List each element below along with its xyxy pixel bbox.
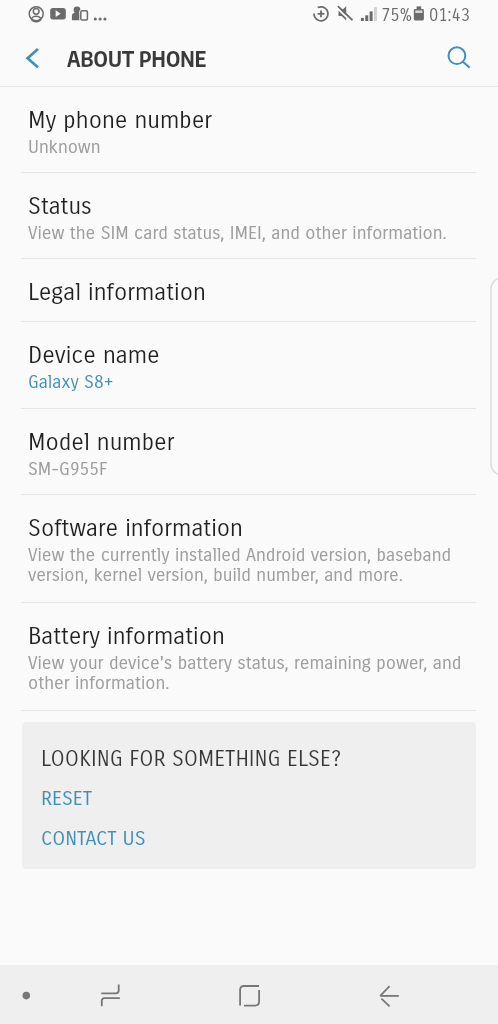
staticText: Software information (28, 514, 244, 542)
button[interactable]: Navigate up (9, 36, 47, 87)
staticText: ABOUT PHONE (67, 45, 207, 72)
button[interactable]: Legal information (0, 259, 498, 321)
button[interactable]: Back (366, 965, 412, 1024)
button[interactable]: RESET (41, 787, 93, 811)
staticText: 01:43 (429, 5, 471, 26)
button[interactable]: Software information (0, 495, 498, 602)
button[interactable]: Model number (0, 409, 498, 494)
staticText: View your device's battery status, remai… (28, 652, 469, 694)
button[interactable]: My phone number (0, 87, 498, 172)
staticText: Battery information (28, 622, 225, 650)
staticText: LOOKING FOR SOMETHING ELSE? (41, 746, 342, 772)
staticText: View the currently installed Android ver… (28, 544, 469, 586)
button[interactable]: Battery information (0, 603, 498, 710)
button[interactable]: Search (436, 36, 482, 87)
button[interactable]: Recent apps (227, 965, 273, 1024)
button[interactable]: Multi window (88, 965, 134, 1024)
staticText: Status (28, 192, 92, 220)
button[interactable]: Device name (0, 322, 498, 408)
staticText: Legal information (28, 278, 206, 306)
staticText: Unknown (28, 136, 101, 157)
staticText: View the SIM card status, IMEI, and othe… (28, 222, 447, 243)
staticText: 75% (381, 5, 413, 26)
button[interactable]: More options (4, 965, 50, 1024)
staticText: Model number (28, 428, 175, 456)
staticText: RESET (41, 787, 93, 811)
staticText: Device name (28, 341, 160, 369)
staticText: SM-G955F (28, 458, 108, 479)
staticText: My phone number (28, 106, 213, 134)
staticText: CONTACT US (41, 827, 146, 851)
staticText: Galaxy S8+ (28, 371, 114, 392)
button[interactable]: CONTACT US (41, 827, 146, 851)
button[interactable]: Status (0, 173, 498, 258)
